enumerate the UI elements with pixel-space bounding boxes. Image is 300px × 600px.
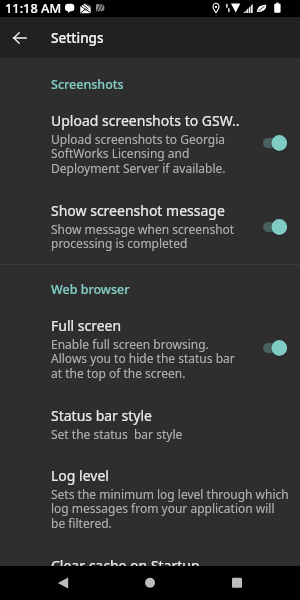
button[interactable]: Home	[133, 566, 167, 600]
staticText: Status bar style	[51, 406, 152, 425]
staticText: Show message when screenshot processing …	[51, 221, 241, 252]
staticText: 11:18 AM	[5, 0, 62, 16]
staticText: Upload screenshots to GSW..	[51, 111, 240, 130]
button[interactable]: Navigate up	[7, 25, 33, 51]
staticText: Set the status bar style	[51, 426, 183, 442]
staticText: Sets the minimum log level through which…	[51, 486, 290, 532]
staticText: Upload screenshots to Georgia SoftWorks …	[51, 131, 241, 177]
staticText: Screenshots	[51, 76, 124, 93]
button[interactable]: Upload screenshots to GSW..	[0, 97, 300, 189]
button[interactable]: Log level	[0, 454, 300, 544]
staticText: Settings	[51, 29, 104, 47]
staticText: Clear cache on Startup	[51, 556, 200, 566]
button[interactable]: Toggle on	[263, 133, 288, 153]
staticText: Log level	[51, 466, 109, 485]
button[interactable]: Clear cache on Startup	[0, 544, 300, 566]
button[interactable]: Toggle on	[263, 217, 288, 237]
button[interactable]: Show screenshot message	[0, 189, 300, 264]
staticText: Web browser	[51, 281, 130, 298]
button[interactable]: Toggle on	[263, 338, 288, 358]
staticText: Full screen	[51, 316, 122, 335]
button[interactable]: Back	[46, 566, 80, 600]
button[interactable]: Status bar style	[0, 394, 300, 454]
staticText: Show screenshot message	[51, 201, 225, 220]
button[interactable]: Full screen	[0, 302, 300, 394]
staticText: Enable full screen browsing. Allows you …	[51, 336, 241, 382]
button[interactable]: Recent apps	[220, 566, 254, 600]
